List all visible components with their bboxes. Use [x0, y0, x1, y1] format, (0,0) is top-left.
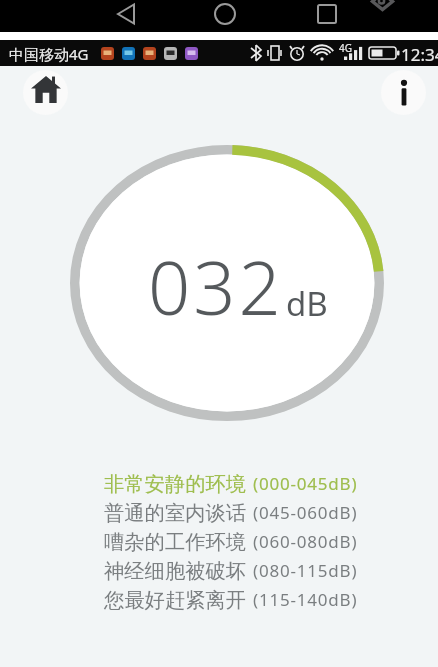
staticText: 12:34 — [401, 43, 438, 66]
staticText: 普通的室内谈话 — [104, 500, 247, 526]
staticText: 中国移动4G — [9, 44, 89, 64]
staticText: (045-060dB) — [253, 501, 358, 524]
staticText: (080-115dB) — [253, 559, 358, 582]
button[interactable]: 神经细胞被破坏 — [0, 556, 438, 585]
staticText: 4G — [339, 41, 352, 55]
staticText: 032 — [148, 236, 284, 337]
staticText: (060-080dB) — [253, 530, 358, 553]
staticText: 神经细胞被破坏 — [104, 558, 247, 584]
staticText: 您最好赶紧离开 — [104, 587, 247, 613]
button[interactable]: 嘈杂的工作环境 — [0, 527, 438, 556]
staticText: (115-140dB) — [253, 588, 358, 611]
staticText: 嘈杂的工作环境 — [104, 529, 247, 555]
button[interactable]: Home — [23, 70, 68, 115]
button[interactable]: 非常安静的环境 — [0, 469, 438, 498]
button[interactable]: 您最好赶紧离开 — [0, 585, 438, 614]
staticText: dB — [286, 281, 328, 326]
staticText: 非常安静的环境 — [104, 471, 247, 497]
button[interactable]: Info — [381, 70, 426, 115]
staticText: (000-045dB) — [253, 472, 358, 495]
button[interactable]: 普通的室内谈话 — [0, 498, 438, 527]
